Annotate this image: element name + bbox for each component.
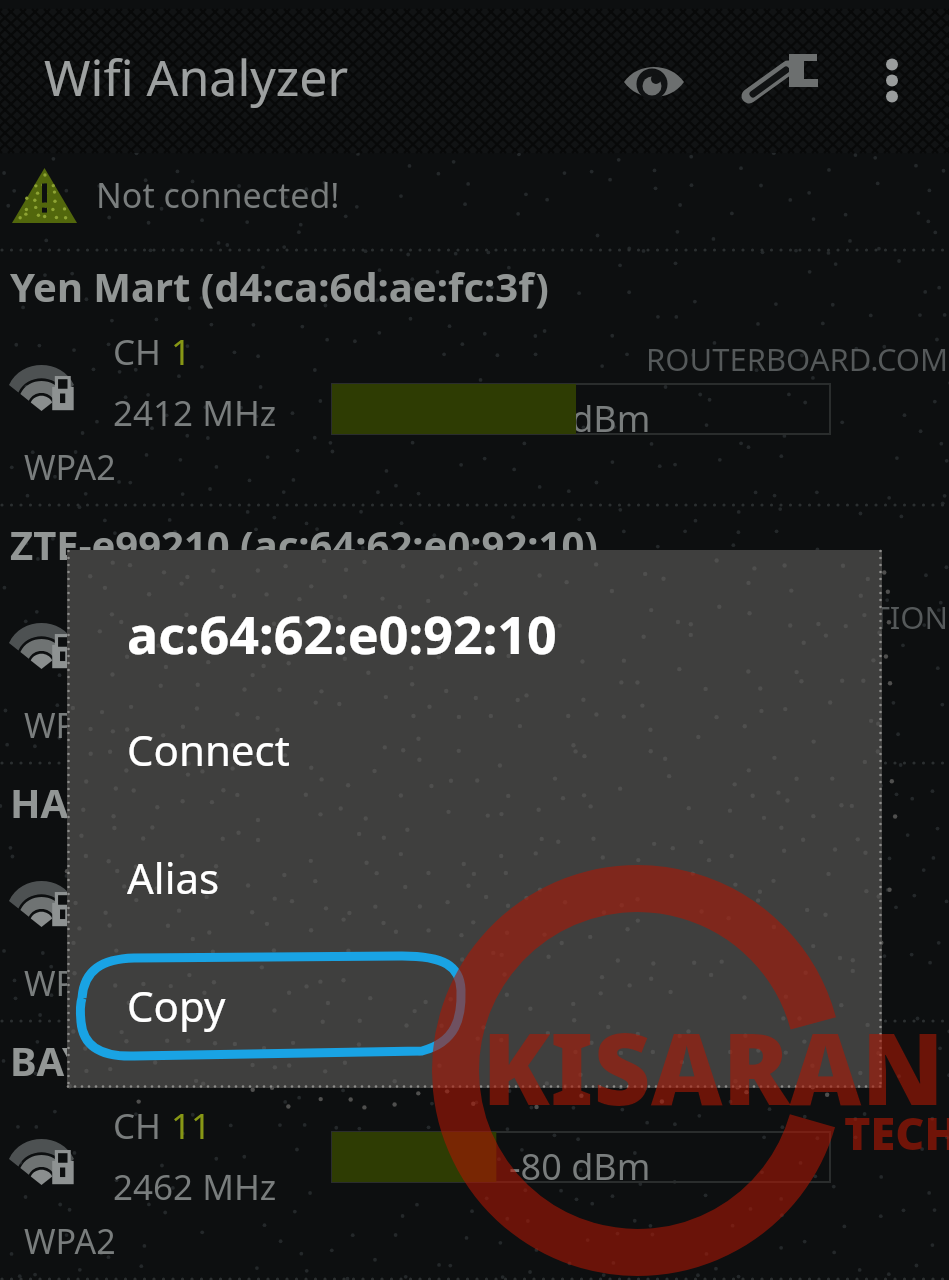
staticText: TECH bbox=[844, 1102, 949, 1163]
button[interactable]: Settings bbox=[742, 32, 842, 132]
staticText: 1 bbox=[171, 328, 192, 376]
button[interactable]: BAYU (ac:64:62:e0:92:11) bbox=[0, 1022, 949, 1280]
button[interactable]: ZTE-e99210 (ac:64:62:e0:92:10) bbox=[0, 506, 949, 764]
staticText: WPA2 bbox=[24, 960, 116, 1006]
button[interactable]: Yen Mart (d4:ca:6d:ae:fc:3f) bbox=[0, 248, 949, 506]
staticText: KISARAN bbox=[482, 999, 945, 1134]
staticText: ZTE-e99210 (ac:64:62:e0:92:10) bbox=[10, 517, 598, 571]
staticText: -62 dBm bbox=[509, 394, 651, 443]
staticText: 2437 MHz bbox=[113, 905, 277, 953]
staticText: -72 dBm bbox=[509, 626, 651, 675]
staticText: Copy bbox=[127, 977, 226, 1034]
staticText: WPA2 bbox=[24, 444, 116, 490]
staticText: Alias bbox=[127, 849, 220, 906]
button[interactable]: HAI-2.4G (c8:3a:35:1b:22:10) bbox=[0, 764, 949, 1022]
staticText: 2437 MHz bbox=[113, 647, 277, 695]
button[interactable]: Toggle visibility bbox=[604, 32, 704, 132]
staticText: CH bbox=[113, 1102, 171, 1150]
staticText: 6 bbox=[171, 586, 192, 634]
staticText: WPA2 bbox=[24, 702, 116, 748]
staticText: CH bbox=[113, 328, 171, 376]
staticText: 2462 MHz bbox=[113, 1163, 277, 1211]
staticText: 11 bbox=[171, 1102, 212, 1150]
staticText: Wifi Analyzer bbox=[44, 43, 349, 111]
staticText: -80 dBm bbox=[509, 1142, 651, 1191]
staticText: ROUTERBOARD.COM bbox=[646, 338, 949, 380]
button[interactable]: Alias bbox=[67, 838, 882, 948]
staticText: Connect bbox=[127, 721, 290, 778]
staticText: 6 bbox=[171, 844, 192, 892]
button[interactable]: Copy bbox=[67, 966, 882, 1076]
staticText: -76 dBm bbox=[509, 884, 651, 933]
button[interactable]: Connect bbox=[67, 710, 882, 820]
staticText: WPA2 bbox=[24, 1218, 116, 1264]
button[interactable]: More options bbox=[852, 40, 932, 120]
staticText: Yen Mart (d4:ca:6d:ae:fc:3f) bbox=[10, 259, 549, 313]
staticText: CH bbox=[113, 586, 171, 634]
staticText: CH bbox=[113, 844, 171, 892]
staticText: 2412 MHz bbox=[113, 389, 277, 437]
staticText: BAYU (ac:64:62:e0:92:11) bbox=[10, 1033, 486, 1087]
staticText: Not connected! bbox=[96, 172, 340, 218]
staticText: ac:64:62:e0:92:10 bbox=[127, 598, 557, 669]
staticText: ZTE CORPORATION bbox=[670, 596, 949, 638]
staticText: HAI-2.4G (c8:3a:35:1b:22:10) bbox=[10, 775, 553, 829]
